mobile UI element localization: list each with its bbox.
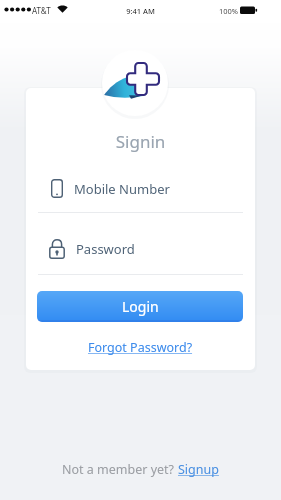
staticText: 100% xyxy=(219,6,239,16)
button[interactable]: Password xyxy=(38,224,243,274)
staticText: Signin xyxy=(26,130,255,153)
staticText: Not a member yet? xyxy=(62,461,178,477)
staticText: Mobile Number xyxy=(74,180,170,198)
button[interactable]: Signup xyxy=(178,461,219,477)
button[interactable]: Mobile Number xyxy=(38,163,243,214)
button[interactable]: Forgot Password? xyxy=(88,339,193,356)
staticText: AT&T xyxy=(32,5,51,16)
staticText: 9:41 AM xyxy=(0,6,281,16)
button[interactable]: Login xyxy=(37,291,243,322)
staticText: Password xyxy=(76,240,135,258)
staticText: Login xyxy=(122,297,159,316)
